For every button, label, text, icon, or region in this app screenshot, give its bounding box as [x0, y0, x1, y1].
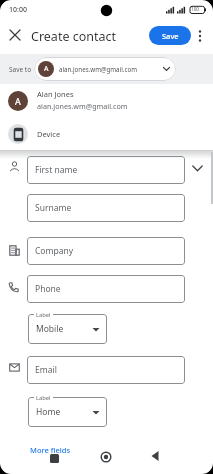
- staticText: 100: [191, 6, 199, 12]
- staticText: Home: [36, 406, 61, 418]
- button[interactable]: First name: [27, 156, 185, 184]
- button[interactable]: [192, 27, 208, 44]
- button[interactable]: Phone: [27, 275, 185, 303]
- button[interactable]: Company: [27, 237, 185, 265]
- staticText: Label: [36, 311, 51, 319]
- staticText: Company: [35, 245, 74, 257]
- button[interactable]: [189, 160, 205, 176]
- staticText: A: [44, 64, 49, 74]
- button[interactable]: A: [34, 57, 176, 81]
- button[interactable]: Surname: [27, 194, 185, 222]
- button[interactable]: [150, 451, 160, 461]
- button[interactable]: Mobile: [28, 314, 107, 344]
- button[interactable]: [99, 450, 112, 463]
- staticText: 10:00: [9, 5, 27, 15]
- staticText: Surname: [35, 202, 72, 214]
- staticText: Alan Jones: [37, 89, 74, 99]
- staticText: More fields: [30, 445, 71, 455]
- staticText: Save to: [9, 65, 32, 74]
- staticText: Save: [162, 31, 179, 41]
- staticText: First name: [35, 164, 78, 176]
- button[interactable]: Save: [149, 26, 191, 45]
- button[interactable]: [0, 118, 213, 150]
- staticText: alan.jones.wm@gmail.com: [59, 65, 137, 73]
- button[interactable]: [50, 454, 59, 463]
- button[interactable]: Home: [28, 397, 107, 427]
- staticText: Create contact: [31, 28, 117, 45]
- staticText: Phone: [35, 283, 61, 295]
- button[interactable]: [6, 26, 24, 44]
- staticText: Email: [35, 364, 57, 376]
- staticText: A: [15, 95, 21, 107]
- staticText: alan.jones.wm@gmail.com: [37, 101, 128, 111]
- button[interactable]: [0, 84, 213, 118]
- staticText: Device: [37, 129, 61, 139]
- staticText: Mobile: [36, 323, 64, 335]
- staticText: Label: [36, 394, 51, 402]
- button[interactable]: Email: [27, 356, 185, 384]
- button[interactable]: More fields: [26, 441, 75, 459]
